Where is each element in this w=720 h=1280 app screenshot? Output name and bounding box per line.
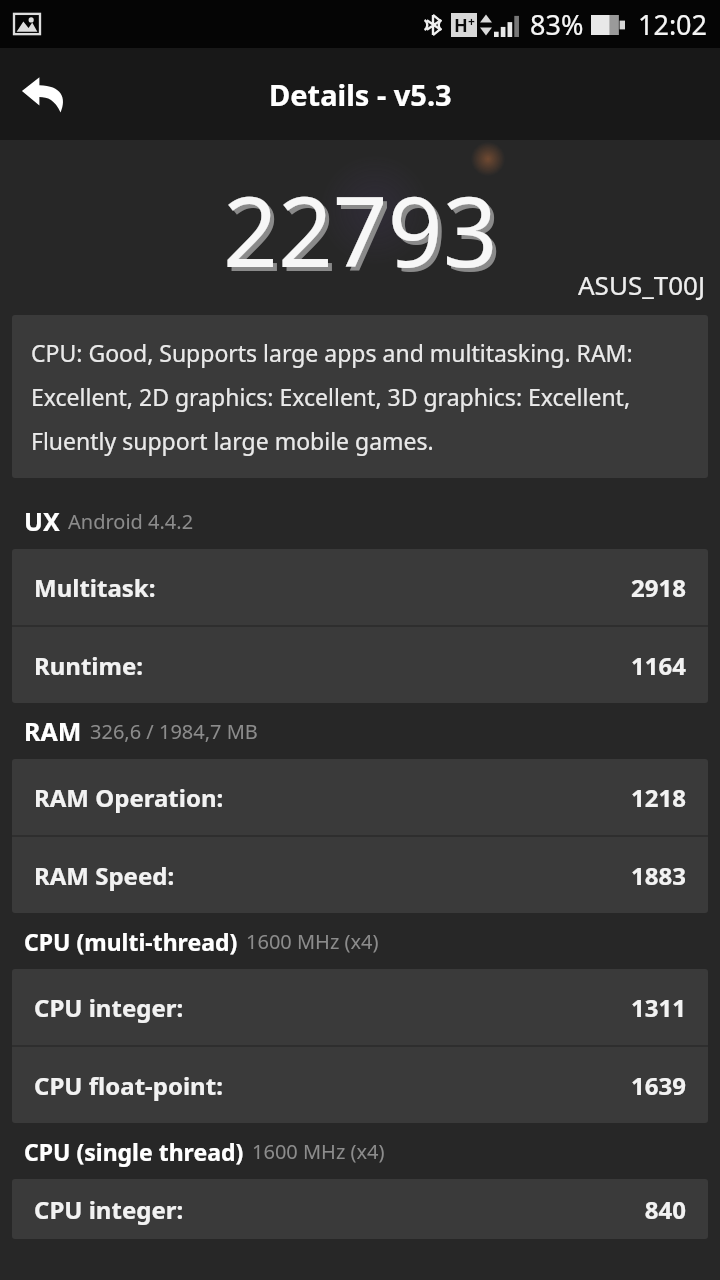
staticText: CPU: Good, Supports large apps and multi… [31,337,689,456]
staticText: RAM Speed: [34,859,175,892]
staticText: 1600 MHz (x4) [246,928,379,955]
staticText: 1218 [631,781,686,814]
staticText: CPU integer: [34,1193,184,1226]
button[interactable]: CPU: Good, Supports large apps and multi… [12,315,708,478]
staticText: 2918 [631,571,686,604]
button[interactable]: RAM Speed: [12,837,708,913]
button[interactable]: CPU integer: [12,1179,708,1239]
staticText: CPU float-point: [34,1069,223,1102]
staticText: Multitask: [34,571,156,604]
staticText: 1600 MHz (x4) [252,1138,385,1165]
staticText: RAM [24,714,82,748]
staticText: CPU integer: [34,991,184,1024]
staticText: RAM Operation: [34,781,224,814]
staticText: CPU (single thread) [24,1136,244,1167]
staticText: Runtime: [34,649,144,682]
staticText: 840 [644,1193,686,1226]
staticText: UX [24,504,60,538]
staticText: + [468,13,475,29]
staticText: 12:02 [638,6,708,43]
button[interactable]: CPU float-point: [12,1047,708,1123]
staticText: H [454,13,468,37]
button[interactable]: Multitask: [12,549,708,625]
button[interactable]: CPU integer: [12,969,708,1045]
staticText: 1164 [631,649,686,682]
staticText: 326,6 / 1984,7 MB [90,718,258,745]
staticText: 22793 [227,168,502,299]
staticText: 83% [530,6,584,43]
button[interactable]: Runtime: [12,627,708,703]
staticText: Android 4.4.2 [68,508,194,535]
button[interactable]: RAM Operation: [12,759,708,835]
button[interactable]: Back [8,58,80,130]
staticText: CPU (multi-thread) [24,926,238,957]
staticText: 1311 [631,991,686,1024]
staticText: Details - v5.3 [269,75,452,114]
staticText: ASUS_T00J [578,267,706,302]
staticText: 1883 [631,859,686,892]
staticText: 22793 [223,164,498,295]
staticText: 1639 [631,1069,686,1102]
